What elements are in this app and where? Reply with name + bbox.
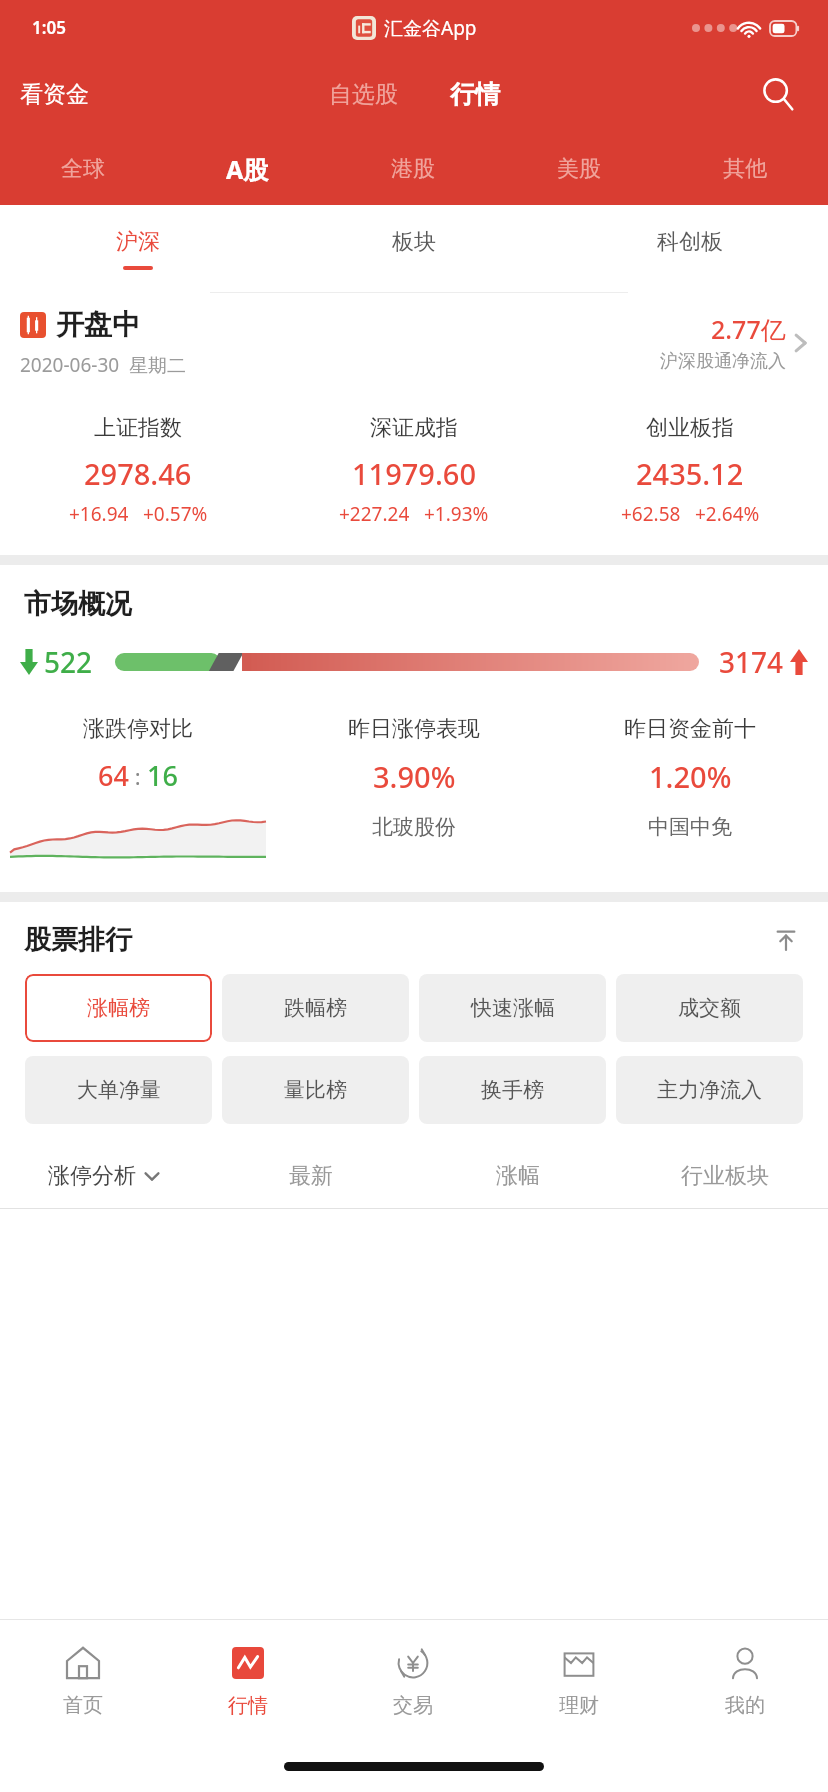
staticText: 1.20%: [649, 757, 732, 796]
staticText: 港股: [391, 155, 435, 183]
staticText: 交易: [393, 1693, 433, 1718]
button[interactable]: 涨幅: [414, 1144, 621, 1208]
button[interactable]: 其他: [662, 133, 828, 205]
button[interactable]: 跌幅榜: [222, 974, 409, 1042]
staticText: 看资金: [20, 80, 89, 109]
staticText: 全球: [61, 155, 105, 183]
staticText: 量比榜: [284, 1077, 347, 1103]
staticText: 522: [44, 643, 93, 681]
staticText: :: [129, 761, 147, 791]
button[interactable]: 大单净量: [25, 1056, 212, 1124]
staticText: 涨幅: [496, 1162, 540, 1190]
button[interactable]: 看资金: [16, 72, 93, 117]
button[interactable]: 港股: [330, 133, 496, 205]
staticText: 11979.60: [352, 454, 477, 493]
staticText: 3.90%: [373, 757, 456, 796]
staticText: 2435.12: [636, 454, 744, 493]
button[interactable]: 板块: [276, 205, 552, 293]
button[interactable]: 昨日涨停表现: [276, 715, 552, 840]
staticText: 理财: [559, 1693, 599, 1718]
button[interactable]: 最新: [207, 1144, 414, 1208]
staticText: A股: [226, 152, 269, 186]
button[interactable]: 行情: [436, 71, 514, 118]
button[interactable]: 行业板块: [621, 1144, 828, 1208]
staticText: 涨停分析: [48, 1162, 136, 1190]
staticText: 1:05: [32, 16, 66, 39]
staticText: +0.57%: [143, 501, 208, 527]
staticText: 行情: [228, 1693, 268, 1718]
staticText: +1.93%: [424, 501, 489, 527]
staticText: 快速涨幅: [471, 995, 555, 1021]
staticText: 深证成指: [370, 414, 458, 442]
staticText: 股票排行: [24, 923, 132, 957]
button[interactable]: 沪深: [0, 205, 276, 293]
button[interactable]: 自选股: [315, 72, 412, 117]
staticText: +227.24: [339, 501, 410, 527]
button[interactable]: 科创板: [552, 205, 828, 293]
staticText: 沪深: [116, 228, 160, 256]
staticText: 换手榜: [481, 1077, 544, 1103]
staticText: +62.58: [621, 501, 681, 527]
staticText: 北玻股份: [372, 814, 456, 840]
staticText: 主力净流入: [657, 1077, 762, 1103]
staticText: 跌幅榜: [284, 995, 347, 1021]
staticText: 自选股: [329, 80, 398, 109]
staticText: 涨幅榜: [87, 995, 150, 1021]
button[interactable]: 昨日资金前十: [552, 715, 828, 840]
button[interactable]: 涨跌停对比: [0, 715, 276, 862]
staticText: 我的: [725, 1693, 765, 1718]
staticText: 首页: [63, 1693, 103, 1718]
staticText: 开盘中: [56, 307, 140, 342]
button[interactable]: 快速涨幅: [419, 974, 606, 1042]
button[interactable]: 创业板指: [552, 414, 828, 527]
button[interactable]: 理财: [496, 1620, 662, 1740]
button[interactable]: A股: [165, 133, 330, 205]
staticText: 昨日资金前十: [624, 715, 756, 743]
staticText: +2.64%: [695, 501, 760, 527]
staticText: 中国中免: [648, 814, 732, 840]
staticText: 行情: [450, 79, 500, 110]
button[interactable]: Search: [754, 70, 802, 118]
staticText: 汇金谷App: [384, 15, 477, 41]
button[interactable]: 主力净流入: [616, 1056, 803, 1124]
button[interactable]: 开盘中: [0, 293, 828, 388]
button[interactable]: 美股: [496, 133, 662, 205]
staticText: 昨日涨停表现: [348, 715, 480, 743]
button[interactable]: 深证成指: [276, 414, 552, 527]
button[interactable]: 上证指数: [0, 414, 276, 527]
button[interactable]: 量比榜: [222, 1056, 409, 1124]
button[interactable]: 成交额: [616, 974, 803, 1042]
staticText: +16.94: [69, 501, 129, 527]
button[interactable]: 换手榜: [419, 1056, 606, 1124]
staticText: 涨跌停对比: [83, 715, 193, 743]
staticText: 最新: [289, 1162, 333, 1190]
button[interactable]: 交易: [330, 1620, 496, 1740]
staticText: 科创板: [657, 228, 723, 256]
staticText: 2.77亿: [711, 312, 786, 346]
staticText: 大单净量: [77, 1077, 161, 1103]
staticText: 美股: [557, 155, 601, 183]
staticText: 16: [147, 757, 178, 794]
staticText: 2020-06-30 星期二: [20, 352, 187, 378]
button[interactable]: 首页: [0, 1620, 165, 1740]
staticText: 其他: [723, 155, 767, 183]
button[interactable]: Collapse: [768, 922, 804, 958]
staticText: 成交额: [678, 995, 741, 1021]
button[interactable]: 涨停分析: [0, 1144, 207, 1208]
staticText: 3174: [719, 643, 784, 681]
staticText: 上证指数: [94, 414, 182, 442]
staticText: 创业板指: [646, 414, 734, 442]
button[interactable]: 涨幅榜: [25, 974, 212, 1042]
staticText: 市场概况: [24, 587, 132, 621]
staticText: 沪深股通净流入: [660, 350, 786, 373]
button[interactable]: 行情: [165, 1620, 330, 1740]
staticText: 板块: [392, 228, 436, 256]
staticText: 2978.46: [84, 454, 192, 493]
button[interactable]: 全球: [0, 133, 165, 205]
staticText: 64: [98, 757, 129, 794]
button[interactable]: 我的: [662, 1620, 828, 1740]
staticText: 行业板块: [681, 1162, 769, 1190]
